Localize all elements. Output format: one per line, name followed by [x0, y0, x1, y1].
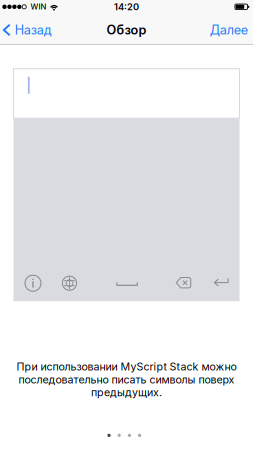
button[interactable]: Delete — [176, 277, 191, 288]
staticText: Обзор — [106, 22, 146, 38]
staticText: При использовании MyScript Stack можно — [16, 360, 236, 373]
button[interactable]: Далее — [210, 22, 253, 38]
staticText: Далее — [210, 22, 248, 38]
button[interactable]: Return — [214, 278, 229, 286]
staticText: WIN — [30, 2, 46, 11]
button[interactable]: Next keyboard — [62, 276, 77, 290]
staticText: предыдущих. — [91, 386, 162, 399]
staticText: Назад — [15, 22, 52, 38]
staticText: последовательно писать символы поверх — [18, 373, 234, 386]
button[interactable]: Назад — [0, 22, 52, 38]
staticText: 14:20 — [114, 1, 139, 12]
button[interactable]: Info — [25, 275, 41, 291]
button[interactable]: Space — [116, 282, 138, 286]
